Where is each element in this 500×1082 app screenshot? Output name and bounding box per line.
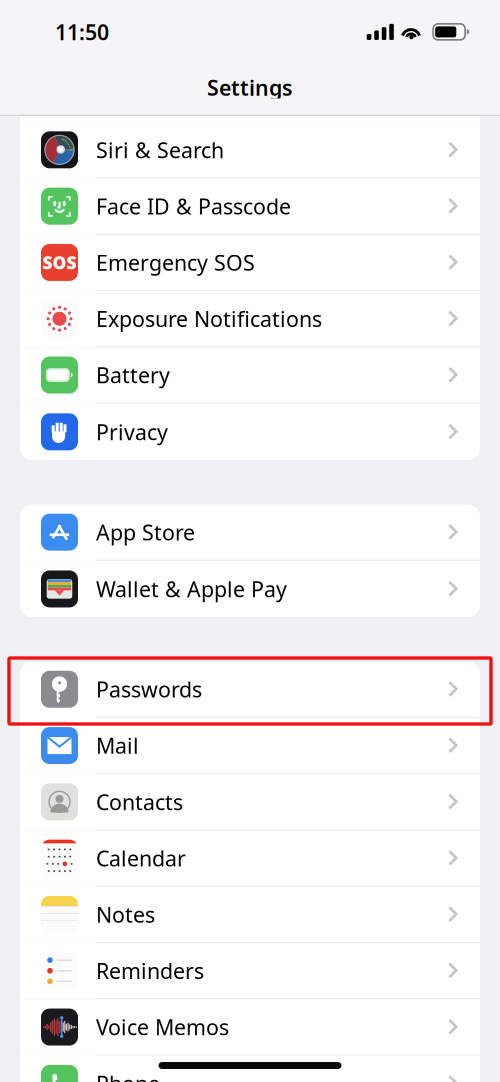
button[interactable]: Wallet & Apple Pay bbox=[20, 561, 480, 617]
staticText: Contacts bbox=[96, 788, 183, 816]
button[interactable]: Mail bbox=[20, 718, 480, 774]
staticText: Privacy bbox=[96, 418, 168, 446]
staticText: Passwords bbox=[96, 675, 202, 703]
staticText: Battery bbox=[96, 361, 170, 389]
button[interactable]: Settings bbox=[0, 76, 500, 98]
button[interactable]: Contacts bbox=[20, 774, 480, 830]
staticText: 11:50 bbox=[55, 18, 109, 46]
staticText: App Store bbox=[96, 518, 195, 546]
button[interactable]: App Store bbox=[20, 504, 480, 561]
button[interactable]: Battery bbox=[20, 347, 480, 404]
button[interactable]: Siri & Search bbox=[20, 122, 480, 178]
button[interactable]: Reminders bbox=[20, 943, 480, 999]
button[interactable]: Phone bbox=[20, 1056, 480, 1082]
button[interactable]: SOS bbox=[20, 235, 480, 291]
staticText: Notes bbox=[96, 900, 155, 929]
button[interactable]: Passwords bbox=[20, 662, 480, 718]
staticText: SOS bbox=[42, 251, 76, 274]
button[interactable]: Notes bbox=[20, 887, 480, 943]
button[interactable]: Voice Memos bbox=[20, 999, 480, 1056]
button[interactable]: Privacy bbox=[20, 404, 480, 460]
staticText: Phone bbox=[96, 1069, 160, 1082]
button[interactable]: Calendar bbox=[20, 830, 480, 887]
staticText: Voice Memos bbox=[96, 1013, 229, 1041]
staticText: Face ID & Passcode bbox=[96, 192, 291, 220]
staticText: Exposure Notifications bbox=[96, 305, 322, 333]
staticText: Calendar bbox=[96, 844, 186, 872]
staticText: Settings bbox=[207, 73, 293, 101]
staticText: Emergency SOS bbox=[96, 248, 255, 277]
button[interactable]: Exposure Notifications bbox=[20, 291, 480, 347]
staticText: Wallet & Apple Pay bbox=[96, 575, 287, 603]
staticText: Siri & Search bbox=[96, 136, 224, 164]
staticText: Reminders bbox=[96, 957, 204, 985]
button[interactable]: Face ID & Passcode bbox=[20, 178, 480, 235]
staticText: Mail bbox=[96, 731, 139, 760]
